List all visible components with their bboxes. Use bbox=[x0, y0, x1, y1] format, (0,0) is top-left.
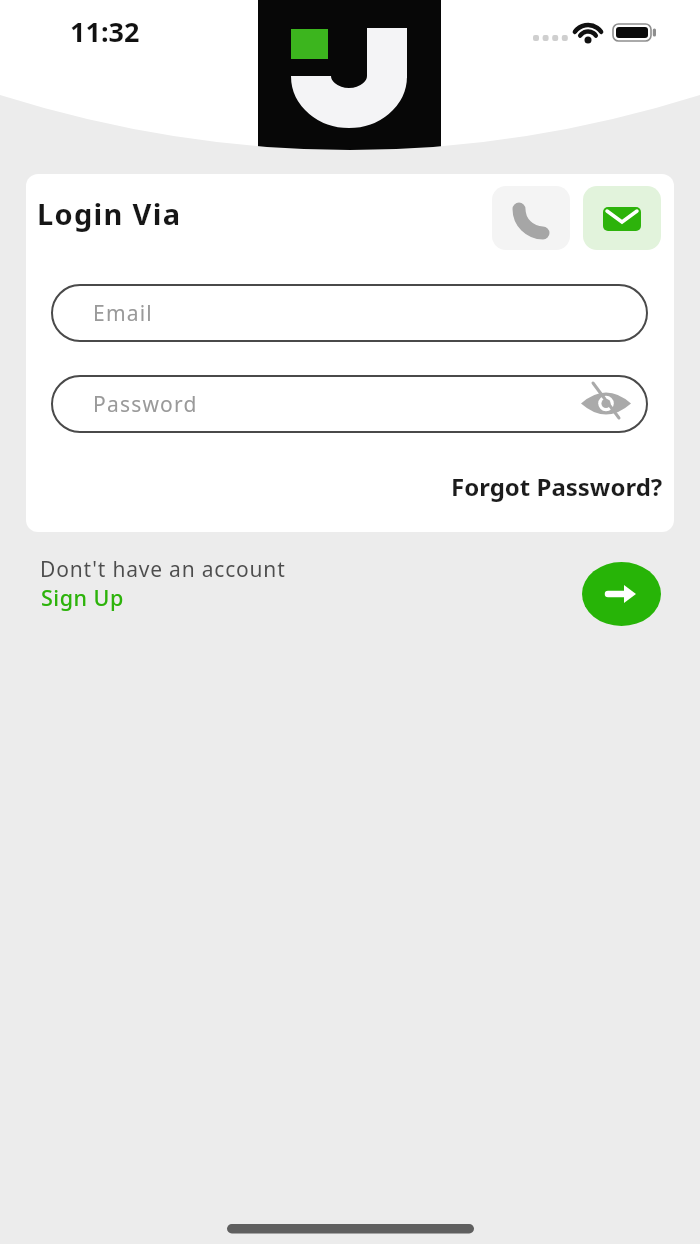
button[interactable]: Forgot Password? bbox=[451, 470, 663, 503]
button[interactable]: Email bbox=[51, 284, 648, 342]
button[interactable] bbox=[492, 186, 570, 250]
button[interactable] bbox=[582, 562, 661, 626]
staticText: Login Via bbox=[37, 194, 182, 233]
button[interactable]: Password bbox=[51, 375, 648, 433]
staticText: 11:32 bbox=[70, 13, 140, 50]
button[interactable] bbox=[583, 186, 661, 250]
staticText: Dont't have an account bbox=[40, 555, 286, 584]
button[interactable]: Sign Up bbox=[41, 583, 124, 612]
staticText: Email bbox=[93, 299, 153, 328]
staticText: Password bbox=[93, 390, 198, 419]
